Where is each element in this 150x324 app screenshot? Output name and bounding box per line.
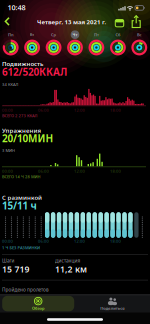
- staticText: Сб: [113, 29, 123, 40]
- staticText: Вс: [135, 29, 144, 40]
- staticText: Поделиться: [88, 303, 137, 314]
- button[interactable]: Назад: [1, 14, 14, 29]
- staticText: Пн: [5, 29, 16, 40]
- staticText: Вт: [28, 29, 37, 40]
- button[interactable]: Вт: [21, 30, 43, 57]
- button[interactable]: Сб: [107, 30, 129, 57]
- staticText: 10:48: [0, 0, 34, 17]
- button[interactable]: Пн: [0, 30, 21, 57]
- staticText: Обзор: [26, 303, 51, 314]
- button[interactable]: Вс: [129, 30, 150, 57]
- button[interactable]: Пт: [86, 30, 107, 57]
- button[interactable]: Чт: [64, 30, 86, 57]
- button[interactable]: Обзор: [2, 296, 74, 311]
- staticText: Четверг, 13 мая 2021 г.: [2, 14, 140, 30]
- staticText: Чт: [70, 29, 80, 40]
- button[interactable]: Ср: [43, 30, 64, 57]
- staticText: Пт: [91, 29, 101, 40]
- button[interactable]: Поделиться: [75, 296, 149, 311]
- button[interactable]: Календарь: [112, 16, 126, 30]
- staticText: Ср: [49, 29, 59, 40]
- button[interactable]: Поделиться: [129, 14, 143, 29]
